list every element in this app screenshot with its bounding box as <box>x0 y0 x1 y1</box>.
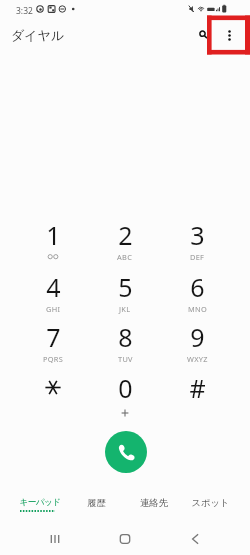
button[interactable]: 1 <box>22 212 84 274</box>
button[interactable]: Back <box>185 529 205 549</box>
button[interactable]: # <box>166 365 228 427</box>
staticText: 8 <box>118 320 133 354</box>
button[interactable]: Search <box>192 24 213 45</box>
staticText: MNO <box>188 304 207 314</box>
staticText: GHI <box>46 304 61 314</box>
button[interactable]: キーパッド <box>8 488 72 512</box>
button[interactable]: 6 <box>166 264 228 326</box>
button[interactable]: 2 <box>94 212 156 274</box>
staticText: 7 <box>46 320 61 354</box>
staticText: 3 <box>190 218 205 252</box>
staticText: スポット <box>191 497 230 509</box>
staticText: JKL <box>119 304 131 314</box>
button[interactable]: 9 <box>166 314 228 376</box>
button[interactable]: 3 <box>166 212 228 274</box>
button[interactable] <box>22 365 84 427</box>
button[interactable]: 7 <box>22 314 84 376</box>
button[interactable]: Call <box>105 431 147 473</box>
staticText: 1 <box>46 218 61 252</box>
staticText: 3:32 <box>16 5 33 17</box>
button[interactable]: スポット <box>178 488 242 512</box>
button[interactable]: 0 <box>94 365 156 427</box>
staticText: 0 <box>118 371 133 405</box>
button[interactable]: 連絡先 <box>122 488 186 512</box>
button[interactable]: More options <box>219 24 240 45</box>
button[interactable]: 5 <box>94 264 156 326</box>
staticText: 9 <box>190 320 205 354</box>
button[interactable]: Home <box>115 529 135 549</box>
staticText: 6 <box>190 270 205 304</box>
staticText: TUV <box>118 354 133 364</box>
button[interactable]: 4 <box>22 264 84 326</box>
button[interactable]: 履歴 <box>64 488 128 512</box>
staticText: キーパッド <box>19 497 61 508</box>
staticText: 5 <box>118 270 133 304</box>
staticText: 2 <box>118 218 133 252</box>
staticText: ダイヤル <box>11 27 65 43</box>
staticText: 連絡先 <box>140 497 168 509</box>
button[interactable]: Recent apps <box>45 529 65 549</box>
staticText: 履歴 <box>87 497 106 509</box>
staticText: 4 <box>46 270 61 304</box>
staticText: ABC <box>117 252 133 262</box>
staticText: # <box>189 371 206 405</box>
button[interactable]: 8 <box>94 314 156 376</box>
staticText: PQRS <box>43 354 64 364</box>
staticText: DEF <box>190 252 205 262</box>
staticText: WXYZ <box>187 354 208 364</box>
